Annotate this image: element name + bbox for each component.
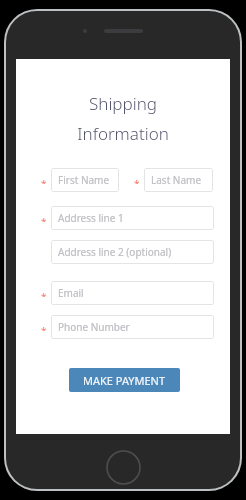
staticText: Last Name (151, 173, 202, 187)
button[interactable]: Last Name (144, 168, 213, 192)
button[interactable]: Address line 2 (optional) (51, 240, 214, 264)
staticText: Information (77, 122, 169, 145)
button[interactable]: Address line 1 (51, 206, 214, 230)
staticText: Address line 1 (58, 211, 124, 225)
staticText: MAKE PAYMENT (83, 373, 166, 388)
button[interactable]: Email (51, 281, 214, 305)
staticText: Phone Number (58, 320, 130, 334)
staticText: * (134, 177, 140, 184)
staticText: Shipping (89, 92, 157, 115)
staticText: * (41, 290, 47, 297)
staticText: First Name (58, 173, 110, 187)
staticText: * (41, 324, 47, 331)
staticText: Email (58, 286, 84, 300)
button[interactable]: Phone Number (51, 315, 214, 339)
staticText: * (41, 177, 47, 184)
staticText: Address line 2 (optional) (58, 245, 172, 259)
button[interactable]: First Name (51, 168, 119, 192)
button[interactable]: MAKE PAYMENT (69, 368, 180, 392)
staticText: * (41, 215, 47, 222)
